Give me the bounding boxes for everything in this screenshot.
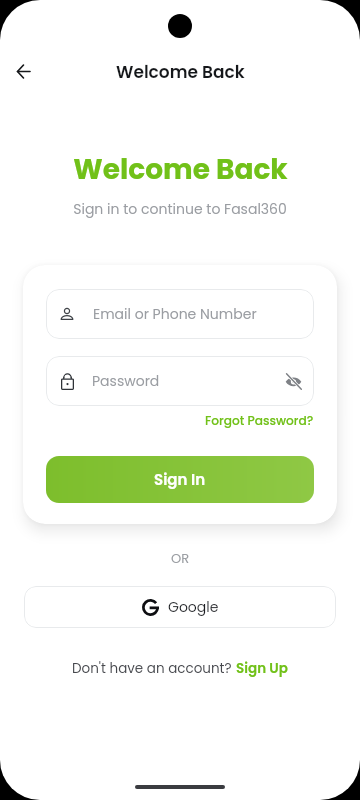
button[interactable]: Sign Up	[236, 659, 288, 678]
button[interactable]: Back	[3, 51, 43, 91]
staticText: Sign In	[154, 469, 206, 490]
staticText: Welcome Back	[73, 150, 288, 189]
button[interactable]: Email or Phone Number	[46, 289, 314, 339]
staticText: OR	[0, 549, 360, 567]
button[interactable]: Show password	[285, 373, 302, 390]
staticText: Password	[92, 371, 285, 391]
staticText: Google	[168, 597, 219, 617]
staticText: Email or Phone Number	[93, 304, 257, 324]
staticText: Welcome Back	[116, 60, 245, 84]
staticText: Sign in to continue to Fasal360	[73, 199, 287, 219]
button[interactable]: Google	[24, 586, 336, 628]
button[interactable]: Sign In	[46, 456, 314, 503]
button[interactable]: Forgot Password?	[205, 412, 314, 429]
button[interactable]: Password	[46, 356, 314, 406]
staticText: Don't have an account?	[72, 659, 236, 678]
